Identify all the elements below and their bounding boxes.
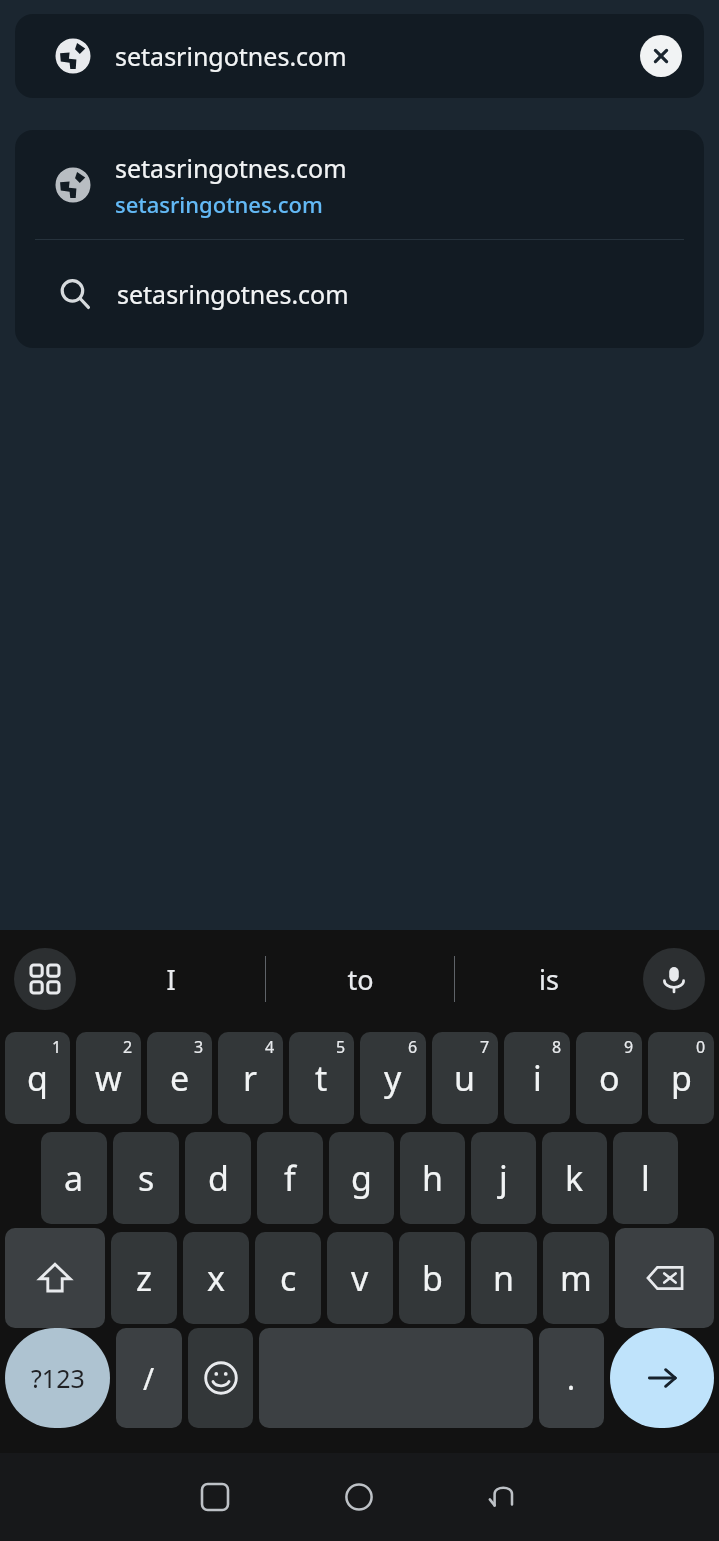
button[interactable]: c (255, 1232, 321, 1324)
staticText: j (499, 1155, 508, 1201)
staticText: p (671, 1055, 692, 1101)
button[interactable]: o (576, 1032, 642, 1124)
button[interactable]: k (542, 1132, 607, 1224)
staticText: 6 (408, 1036, 418, 1058)
staticText: 9 (624, 1036, 634, 1058)
button[interactable]: Recents (143, 1453, 287, 1541)
button[interactable]: is (455, 930, 643, 1028)
staticText: 8 (552, 1036, 562, 1058)
staticText: 7 (480, 1036, 490, 1058)
button[interactable]: y (360, 1032, 426, 1124)
button[interactable]: x (183, 1232, 249, 1324)
staticText: q (27, 1055, 48, 1101)
staticText: g (351, 1155, 372, 1201)
staticText: 4 (265, 1036, 275, 1058)
button[interactable]: z (111, 1232, 177, 1324)
button[interactable]: Clear (640, 35, 682, 77)
button[interactable]: e (147, 1032, 212, 1124)
staticText: 5 (336, 1036, 346, 1058)
staticText: 0 (696, 1036, 706, 1058)
staticText: i (533, 1055, 542, 1101)
button[interactable]: m (543, 1232, 609, 1324)
button[interactable]: Home (287, 1453, 431, 1541)
staticText: 2 (123, 1036, 133, 1058)
button[interactable]: h (400, 1132, 465, 1224)
button[interactable]: i (504, 1032, 570, 1124)
button[interactable]: Shift (5, 1228, 105, 1328)
button[interactable]: j (471, 1132, 536, 1224)
button[interactable]: / (116, 1328, 182, 1428)
button[interactable]: b (399, 1232, 465, 1324)
button[interactable]: to (266, 930, 454, 1028)
button[interactable]: f (257, 1132, 323, 1224)
staticText: w (95, 1055, 122, 1101)
button[interactable]: setasringotnes.com (15, 240, 704, 348)
button[interactable]: q (5, 1032, 70, 1124)
button[interactable]: d (185, 1132, 251, 1224)
staticText: n (493, 1255, 515, 1301)
staticText: f (284, 1155, 296, 1201)
button[interactable]: w (76, 1032, 141, 1124)
button[interactable]: setasringotnes.com (15, 130, 704, 239)
staticText: b (422, 1255, 443, 1301)
staticText: h (422, 1155, 444, 1201)
button[interactable]: g (329, 1132, 394, 1224)
staticText: t (315, 1055, 328, 1101)
staticText: z (136, 1255, 152, 1301)
button[interactable]: ?123 (5, 1328, 110, 1428)
button[interactable]: n (471, 1232, 537, 1324)
staticText: v (351, 1255, 369, 1301)
button[interactable]: . (539, 1328, 604, 1428)
staticText: e (170, 1055, 190, 1101)
button[interactable]: Voice input (643, 948, 705, 1010)
staticText: c (280, 1255, 297, 1301)
staticText: o (599, 1055, 620, 1101)
button[interactable]: l (613, 1132, 678, 1224)
staticText: ?123 (31, 1361, 85, 1395)
button[interactable]: u (432, 1032, 498, 1124)
staticText: . (567, 1358, 576, 1399)
staticText: d (208, 1155, 229, 1201)
staticText: is (539, 961, 559, 998)
staticText: to (347, 961, 374, 998)
staticText: setasringotnes.com (115, 39, 347, 73)
staticText: s (138, 1155, 155, 1201)
button[interactable]: a (41, 1132, 107, 1224)
button[interactable]: Go (610, 1328, 714, 1428)
button[interactable]: Emoji (188, 1328, 253, 1428)
staticText: u (454, 1055, 476, 1101)
staticText: x (207, 1255, 225, 1301)
button[interactable]: r (218, 1032, 283, 1124)
staticText: l (641, 1155, 650, 1201)
button[interactable]: s (113, 1132, 179, 1224)
button[interactable]: setasringotnes.com (15, 14, 704, 98)
staticText: r (243, 1055, 258, 1101)
staticText: 1 (52, 1036, 62, 1058)
button[interactable]: v (327, 1232, 393, 1324)
staticText: a (64, 1155, 84, 1201)
button[interactable]: p (648, 1032, 714, 1124)
staticText: I (166, 961, 176, 998)
staticText: y (384, 1055, 402, 1101)
staticText: 3 (194, 1036, 204, 1058)
staticText: setasringotnes.com (115, 189, 323, 219)
button[interactable]: t (289, 1032, 354, 1124)
button[interactable]: I (76, 930, 265, 1028)
staticText: setasringotnes.com (115, 151, 347, 185)
staticText: m (560, 1255, 592, 1301)
button[interactable]: Back (431, 1453, 575, 1541)
button[interactable]: Backspace (615, 1228, 714, 1328)
button[interactable]: Toolbar (14, 948, 76, 1010)
staticText: k (565, 1155, 584, 1201)
staticText: / (143, 1358, 155, 1399)
staticText: setasringotnes.com (117, 277, 349, 311)
